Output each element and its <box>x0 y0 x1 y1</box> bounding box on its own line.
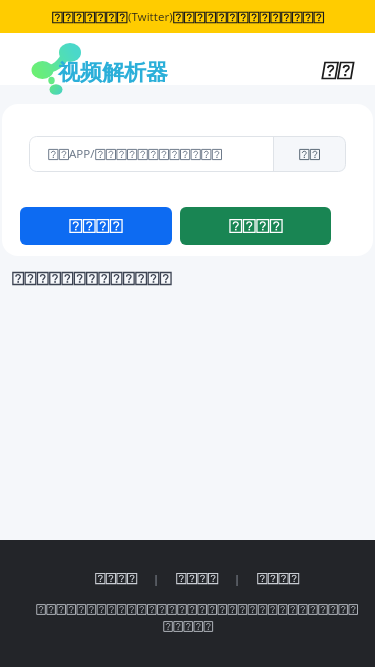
button[interactable] <box>20 207 172 245</box>
button[interactable]: 菜单 <box>321 61 352 80</box>
button[interactable] <box>273 136 346 172</box>
button[interactable] <box>257 572 299 585</box>
button[interactable] <box>176 572 218 585</box>
staticText: (Twitter) <box>128 9 173 25</box>
button[interactable]: (Twitter) <box>0 0 375 33</box>
staticText: | <box>234 571 241 586</box>
button[interactable] <box>95 572 137 585</box>
button[interactable] <box>180 207 331 245</box>
staticText: APP/ <box>69 146 95 162</box>
staticText: | <box>153 571 160 586</box>
staticText: 视频解析器 <box>58 59 168 87</box>
